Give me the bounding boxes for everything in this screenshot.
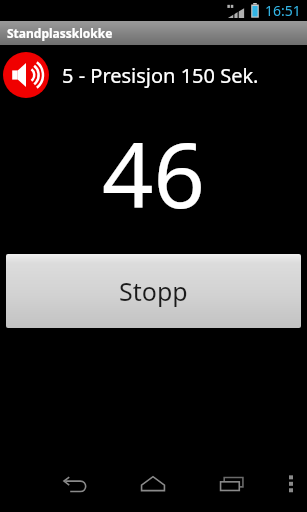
button[interactable]: Home [128,455,178,512]
button[interactable]: Back [50,455,100,512]
staticText: 16:51 [265,1,301,20]
button[interactable]: More options [275,455,307,512]
staticText: 5 - Presisjon 150 Sek. [62,62,259,89]
staticText: Standplassklokke [7,25,113,41]
staticText: Stopp [119,274,188,308]
button[interactable]: Recent apps [207,455,257,512]
button[interactable]: Sound on [2,51,50,99]
button[interactable]: Stopp [6,254,301,328]
staticText: 46 [102,112,205,235]
